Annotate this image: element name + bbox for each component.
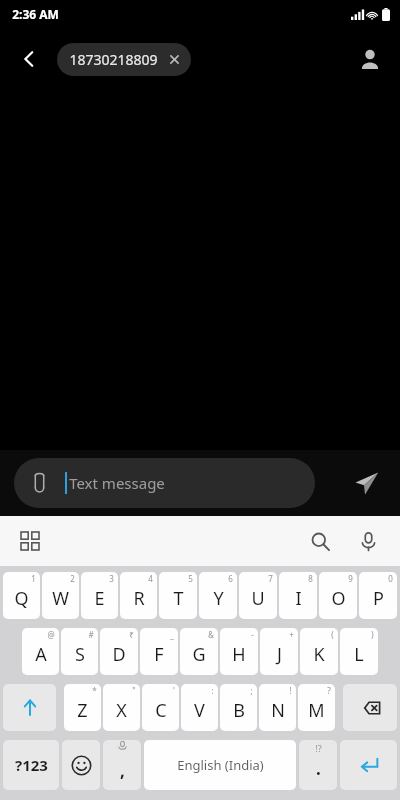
button[interactable]: 9 [319, 572, 357, 619]
button[interactable]: - [220, 628, 258, 675]
staticText: ( [331, 629, 334, 640]
staticText: ) [371, 629, 374, 640]
staticText: 5 [188, 573, 193, 584]
button[interactable]: 5 [159, 572, 197, 619]
staticText: N [271, 698, 285, 723]
staticText: 2 [70, 573, 75, 584]
staticText: D [112, 642, 126, 667]
button[interactable]: 0 [359, 572, 397, 619]
button[interactable]: 7 [239, 572, 277, 619]
staticText: X [116, 698, 127, 723]
staticText: 8 [308, 573, 313, 584]
button[interactable]: English (India) [144, 740, 296, 790]
staticText: Q [14, 586, 29, 611]
staticText: Z [77, 698, 88, 723]
button[interactable]: 4 [120, 572, 157, 619]
button[interactable]: Back [8, 38, 50, 80]
staticText: 18730218809 [69, 50, 158, 69]
button[interactable]: Attach [24, 468, 54, 498]
button[interactable]: 3 [81, 572, 118, 619]
staticText: H [232, 642, 246, 667]
staticText: ₹ [129, 629, 134, 640]
button[interactable]: _ [140, 628, 178, 675]
staticText: 2:36 AM [12, 6, 59, 22]
button[interactable]: : [181, 684, 218, 731]
button[interactable]: Voice input [350, 523, 386, 559]
staticText: K [313, 642, 325, 667]
staticText: ?123 [15, 755, 48, 775]
staticText: 3 [109, 573, 114, 584]
staticText: Text message [69, 473, 165, 493]
staticText: ' [173, 685, 175, 696]
button[interactable]: Keyboard modes [12, 523, 48, 559]
button[interactable]: Emoji [62, 740, 100, 790]
staticText: English (India) [177, 756, 264, 774]
button[interactable]: ( [300, 628, 338, 675]
staticText: : [211, 685, 214, 696]
staticText: Y [213, 586, 224, 611]
staticText: R [133, 586, 145, 611]
staticText: ! [289, 685, 292, 696]
button[interactable]: Enter [340, 740, 397, 790]
staticText: !? [315, 742, 322, 754]
button[interactable]: 18730218809 [57, 43, 191, 76]
button[interactable]: ?123 [3, 740, 59, 790]
staticText: " [132, 685, 136, 696]
staticText: 0 [388, 573, 393, 584]
staticText: ? [327, 685, 331, 696]
button[interactable]: 6 [199, 572, 237, 619]
button[interactable]: ! [259, 684, 296, 731]
staticText: ; [250, 685, 253, 696]
staticText: P [373, 586, 384, 611]
staticText: * [92, 685, 97, 696]
staticText: L [354, 642, 364, 667]
staticText: 9 [348, 573, 353, 584]
staticText: . [316, 757, 321, 780]
button[interactable]: " [103, 684, 140, 731]
button[interactable]: + [260, 628, 298, 675]
button[interactable]: Contact details [348, 37, 392, 81]
staticText: E [94, 586, 105, 611]
button[interactable]: ₹ [100, 628, 138, 675]
staticText: A [35, 642, 47, 667]
staticText: U [251, 586, 265, 611]
staticText: C [155, 698, 167, 723]
staticText: 6 [228, 573, 233, 584]
button[interactable]: 8 [279, 572, 317, 619]
staticText: # [88, 629, 94, 640]
button[interactable]: Search [302, 523, 338, 559]
staticText: 7 [268, 573, 273, 584]
staticText: F [154, 642, 164, 667]
button[interactable]: ) [340, 628, 378, 675]
button[interactable]: Shift [3, 684, 56, 731]
button[interactable]: # [61, 628, 98, 675]
button[interactable]: @ [22, 628, 59, 675]
button[interactable]: Send [342, 459, 390, 507]
staticText: S [75, 642, 85, 667]
staticText: _ [170, 629, 174, 640]
button[interactable]: & [180, 628, 218, 675]
button[interactable]: 1 [3, 572, 40, 619]
staticText: M [308, 698, 325, 723]
staticText: 1 [31, 573, 36, 584]
button[interactable]: ' [142, 684, 179, 731]
staticText: & [208, 629, 214, 640]
button[interactable]: Attach [14, 458, 315, 508]
staticText: @ [47, 629, 55, 640]
button[interactable]: !? [299, 740, 337, 790]
staticText: + [289, 629, 294, 640]
staticText: 4 [148, 573, 153, 584]
staticText: O [331, 586, 346, 611]
staticText: J [277, 642, 282, 667]
button[interactable]: ; [220, 684, 257, 731]
button[interactable]: ? [298, 684, 335, 731]
staticText: T [173, 586, 184, 611]
staticText: V [194, 698, 205, 723]
staticText: W [52, 586, 69, 611]
button[interactable]: * [64, 684, 101, 731]
staticText: B [233, 698, 245, 723]
button[interactable]: Backspace [343, 684, 397, 731]
button[interactable]: 2 [42, 572, 79, 619]
staticText: G [192, 642, 206, 667]
button[interactable]: , [103, 740, 141, 790]
